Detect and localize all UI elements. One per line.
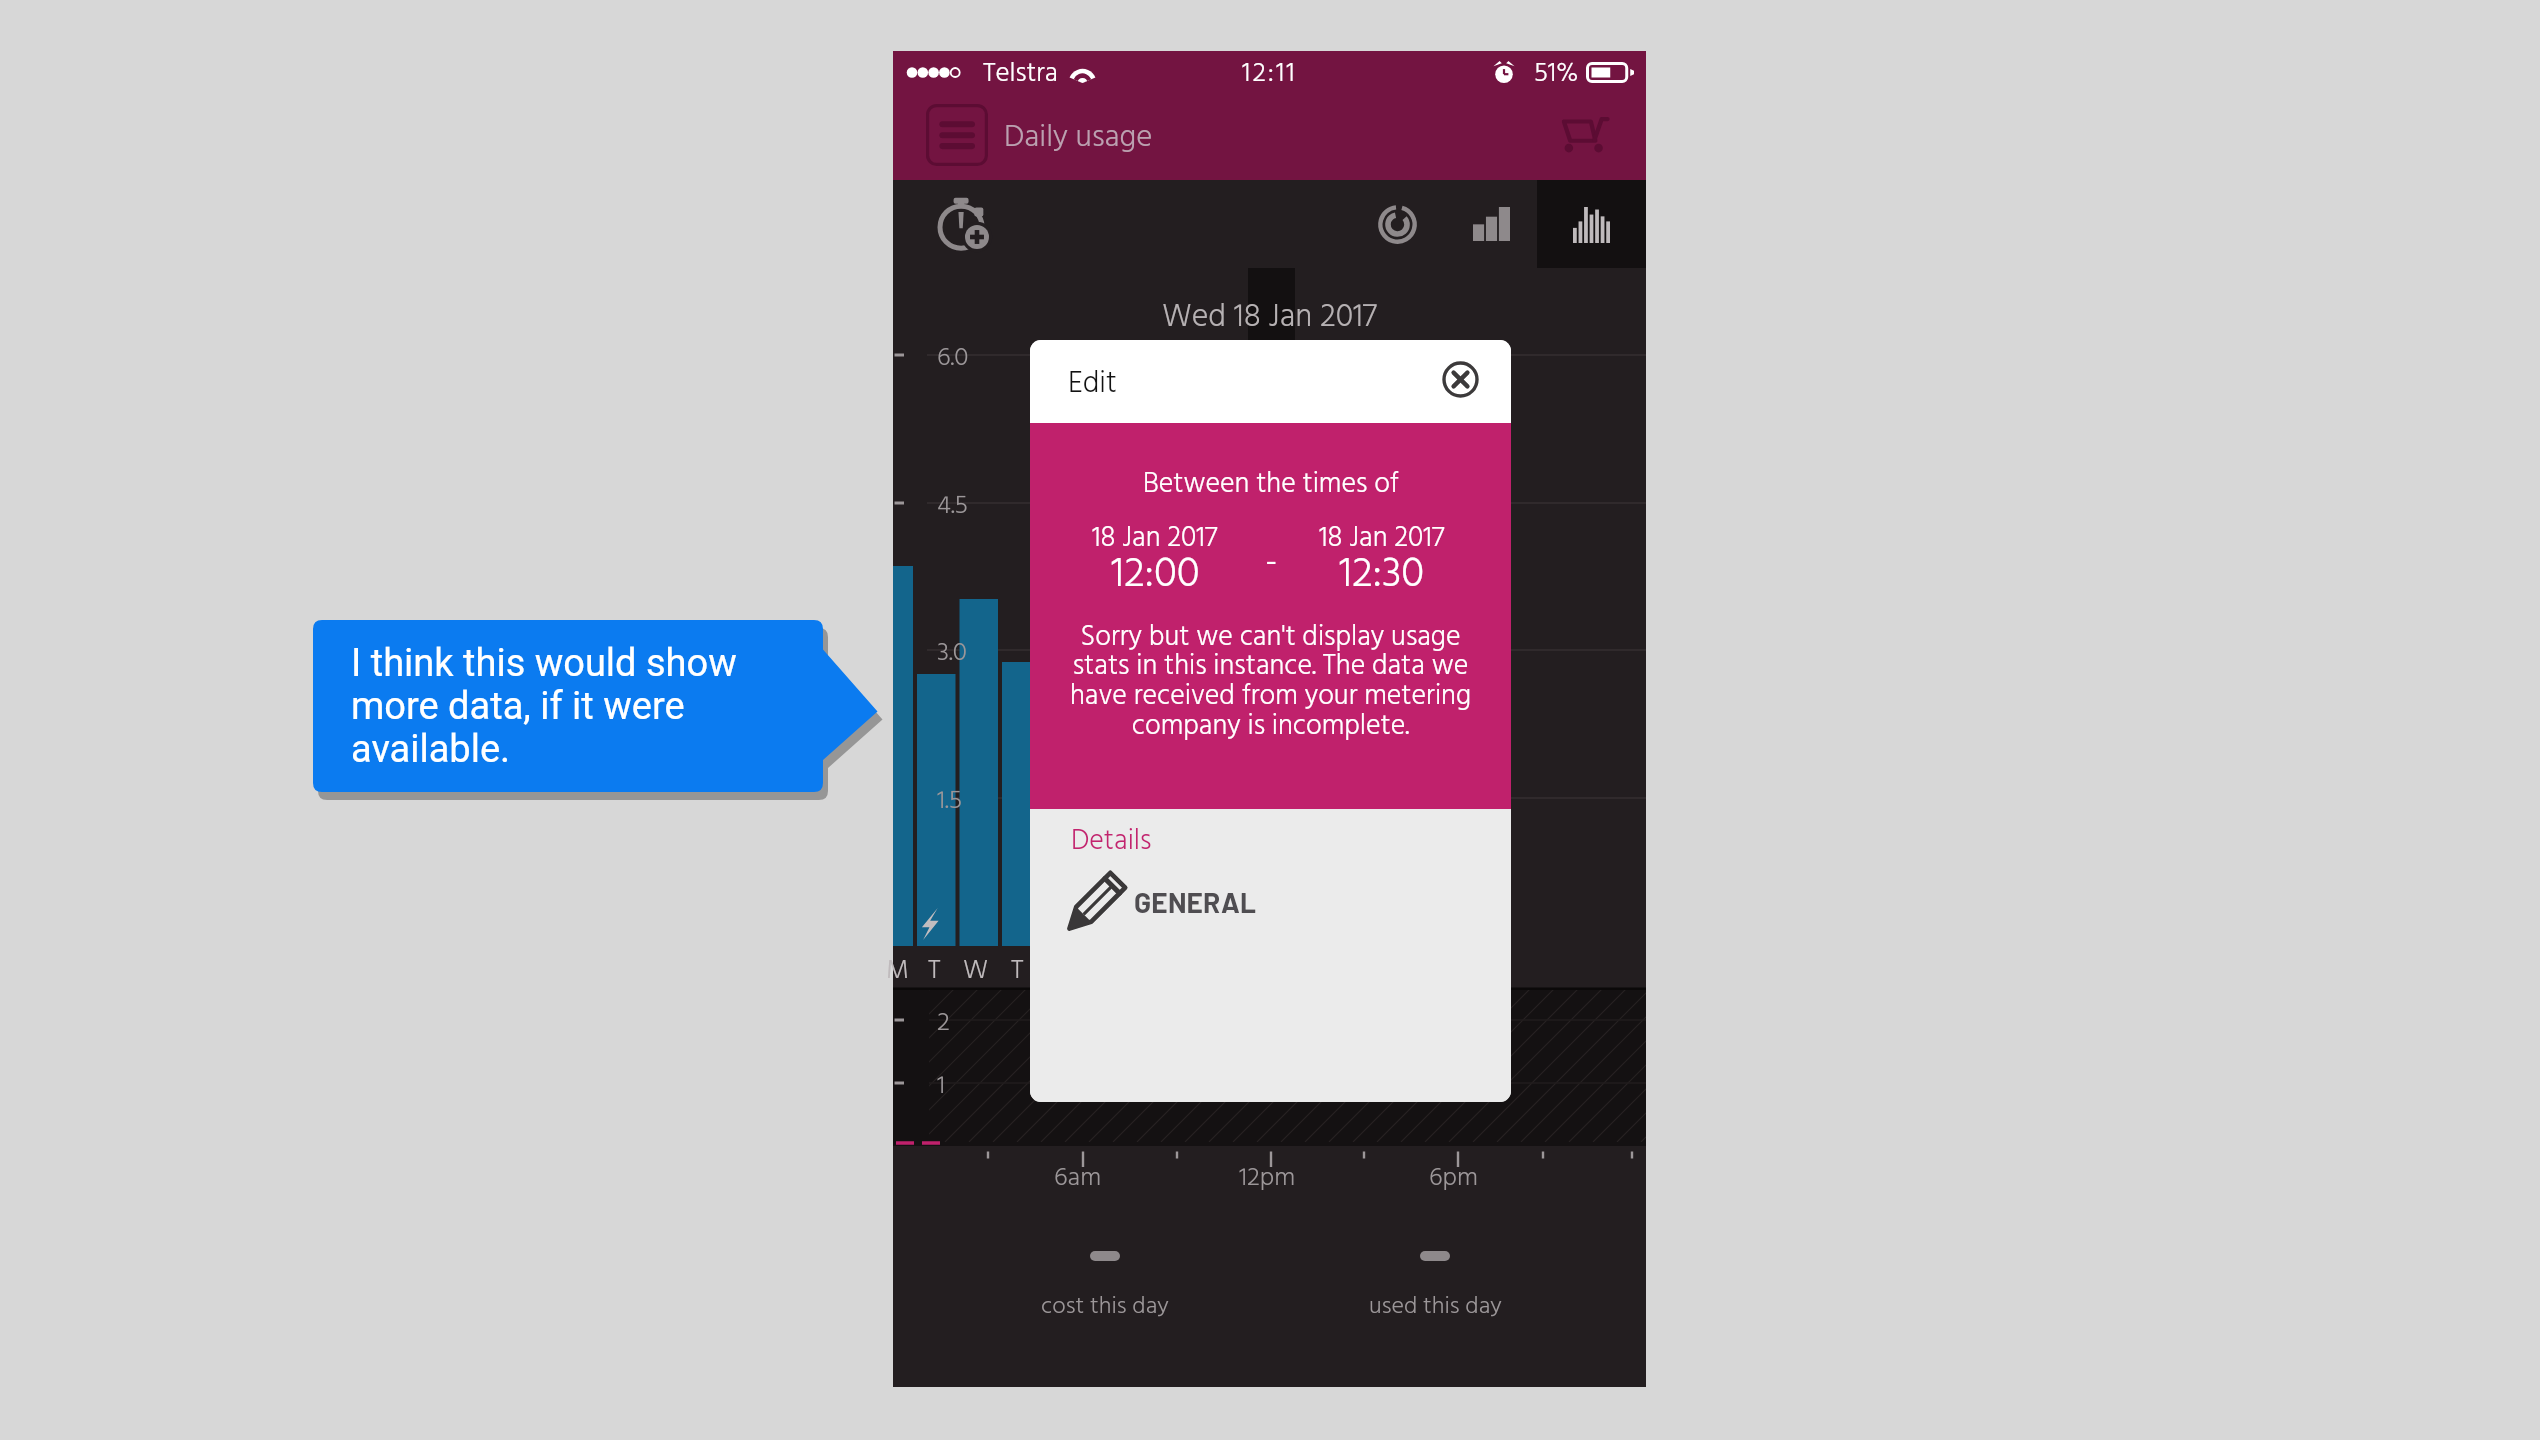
staticText: 12pm <box>1239 1158 1296 1200</box>
staticText: M <box>886 950 909 993</box>
button[interactable]: Shopping cart <box>1547 104 1624 167</box>
button[interactable]: Close <box>1430 349 1490 409</box>
staticText: GENERAL <box>1134 885 1257 919</box>
staticText: 3.0 <box>937 633 967 675</box>
button[interactable]: Live usage <box>1348 180 1446 268</box>
staticText: Details <box>1071 819 1152 864</box>
staticText: 6.0 <box>937 338 969 380</box>
staticText: Daily usage <box>1004 113 1153 163</box>
staticText: 18 Jan 2017 <box>1092 516 1218 561</box>
staticText: Between the times of <box>1143 462 1399 507</box>
button[interactable]: GENERAL <box>1058 855 1398 939</box>
staticText: 4.5 <box>937 486 968 528</box>
staticText: 2 <box>937 1003 950 1045</box>
staticText: T <box>1011 950 1024 993</box>
staticText: T <box>928 950 941 993</box>
button[interactable]: Monthly usage <box>1446 180 1537 268</box>
staticText: W <box>963 950 989 993</box>
staticText: 12:30 <box>1339 542 1425 609</box>
staticText: cost this day <box>1041 1288 1169 1326</box>
staticText: Wed 18 Jan 2017 <box>1162 292 1378 343</box>
staticText: Sorry but we can't display usage stats i… <box>1045 615 1496 750</box>
staticText: I think this would show more data, if it… <box>351 641 737 771</box>
button[interactable]: Menu <box>916 94 998 176</box>
staticText: - <box>1265 535 1278 593</box>
staticText: 1 <box>937 1066 946 1108</box>
staticText: 12:00 <box>1111 542 1200 609</box>
staticText: 6am <box>1054 1158 1102 1200</box>
staticText: 6pm <box>1429 1158 1479 1200</box>
button[interactable]: Add timer <box>901 180 1021 268</box>
staticText: 1.5 <box>937 781 963 823</box>
staticText: 18 Jan 2017 <box>1319 516 1445 561</box>
staticText: Edit <box>1068 360 1117 408</box>
staticText: 51% <box>1534 53 1579 96</box>
staticText: 12:11 <box>1242 53 1297 96</box>
staticText: Telstra <box>983 53 1058 96</box>
staticText: used this day <box>1369 1288 1502 1326</box>
button[interactable]: Daily usage <box>1537 180 1646 268</box>
